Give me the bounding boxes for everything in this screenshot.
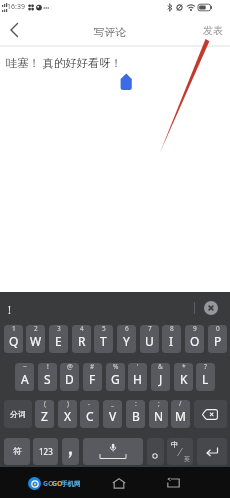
button[interactable]: 9 (185, 325, 204, 353)
staticText: ! (47, 363, 49, 371)
button[interactable] (147, 438, 164, 465)
staticText: K (180, 371, 188, 387)
staticText: N (154, 408, 164, 424)
staticText: S (44, 371, 51, 387)
staticText: H (133, 371, 142, 387)
staticText: 5 (102, 325, 106, 333)
button[interactable] (108, 473, 130, 493)
staticText: M (175, 408, 186, 424)
staticText: - (88, 400, 91, 408)
staticText: Z (41, 408, 48, 424)
staticText: 123 (39, 446, 53, 457)
staticText: 发表 (203, 24, 223, 37)
staticText: & (158, 363, 163, 371)
staticText: 写评论 (0, 26, 225, 40)
button[interactable]: ? (196, 363, 215, 391)
staticText: GO (43, 479, 54, 489)
button[interactable]: 符 (4, 438, 30, 465)
staticText: GO (52, 479, 63, 489)
staticText: A (21, 371, 29, 387)
button[interactable]: : (126, 400, 145, 428)
staticText: 中 (171, 440, 178, 449)
staticText: E (55, 333, 62, 349)
staticText: 0 (216, 325, 220, 333)
button[interactable]: _ (103, 400, 122, 428)
staticText: L (202, 371, 209, 387)
button[interactable]: # (83, 363, 102, 391)
staticText: Q (9, 333, 19, 349)
staticText: 9 (193, 325, 197, 333)
staticText: F (89, 371, 96, 387)
button[interactable]: 中 (167, 438, 193, 465)
staticText: _ (111, 400, 114, 408)
staticText: B (132, 408, 140, 424)
button[interactable] (197, 438, 227, 465)
staticText: ~ (23, 363, 27, 371)
staticText: : (135, 400, 137, 408)
staticText: 3 (57, 325, 61, 333)
staticText: 分词 (10, 409, 26, 419)
staticText: X (64, 408, 72, 424)
staticText: 哇塞！ 真的好好看呀！ (6, 55, 122, 70)
staticText: / (179, 400, 182, 408)
staticText: ; (158, 400, 160, 408)
button[interactable]: ) (58, 400, 77, 428)
staticText: O (190, 333, 200, 349)
button[interactable]: 3 (49, 325, 68, 353)
button[interactable]: 1 (4, 325, 23, 353)
staticText: 2 (34, 325, 38, 333)
button[interactable]: 2 (26, 325, 45, 353)
button[interactable]: ! (38, 363, 57, 391)
staticText: W (30, 333, 42, 349)
button[interactable]: - (80, 400, 99, 428)
button[interactable]: * (174, 363, 193, 391)
staticText: V (109, 408, 117, 424)
button[interactable]: & (151, 363, 170, 391)
staticText: J (159, 371, 163, 387)
button[interactable]: @ (60, 363, 79, 391)
button[interactable]: ; (149, 400, 168, 428)
staticText: 符 (13, 446, 22, 457)
staticText: I (169, 333, 174, 349)
staticText: R (78, 333, 86, 349)
staticText: Y (123, 333, 130, 349)
staticText: * (182, 363, 186, 371)
staticText: C (86, 408, 94, 424)
button[interactable]: 4 (72, 325, 91, 353)
staticText: @ (67, 363, 73, 371)
button[interactable] (204, 301, 218, 315)
staticText: D (65, 371, 74, 387)
button[interactable]: 分词 (4, 400, 32, 428)
staticText: 6 (125, 325, 129, 333)
button[interactable]: 6 (117, 325, 136, 353)
staticText: % (113, 363, 119, 371)
staticText: U (145, 333, 154, 349)
button[interactable] (62, 438, 79, 465)
staticText: 英 (184, 455, 190, 463)
button[interactable]: ( (35, 400, 54, 428)
button[interactable]: 发表 (196, 19, 230, 41)
staticText: 8 (170, 325, 174, 333)
button[interactable] (4, 20, 24, 40)
staticText: 7 (148, 325, 152, 333)
staticText: ' (137, 363, 139, 371)
button[interactable] (162, 473, 184, 493)
button[interactable]: ~ (15, 363, 34, 391)
button[interactable]: 123 (33, 438, 58, 465)
button[interactable]: 5 (94, 325, 113, 353)
button[interactable] (83, 438, 143, 465)
staticText: 4 (80, 325, 84, 333)
button[interactable]: 0 (208, 325, 227, 353)
button[interactable]: 8 (162, 325, 181, 353)
staticText: 16:39 (7, 2, 25, 12)
button[interactable]: ' (128, 363, 147, 391)
button[interactable]: % (106, 363, 125, 391)
staticText: T (100, 333, 107, 349)
staticText: ? (204, 363, 207, 371)
staticText: 1 (12, 325, 16, 333)
staticText: ! (8, 302, 11, 317)
button[interactable] (194, 400, 227, 428)
button[interactable]: 7 (140, 325, 159, 353)
button[interactable]: / (171, 400, 190, 428)
staticText: P (214, 333, 222, 349)
